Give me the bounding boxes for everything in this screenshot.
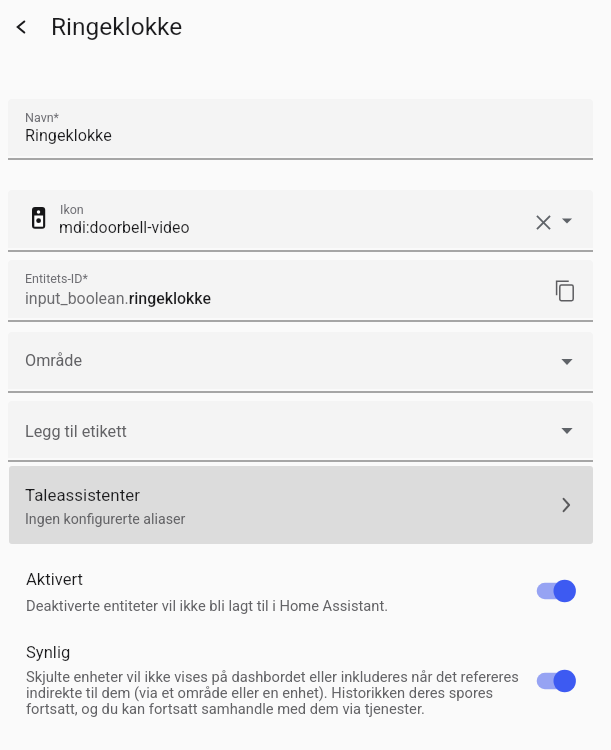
- button[interactable]: Add label: [555, 419, 579, 443]
- button[interactable]: Clear icon: [531, 210, 555, 234]
- staticText: Deaktiverte entiteter vil ikke bli lagt …: [26, 597, 389, 614]
- staticText: Entitets-ID*: [25, 271, 88, 286]
- button[interactable]: Copy entity id: [550, 274, 580, 304]
- staticText: input_boolean.ringeklokke: [25, 289, 211, 308]
- button[interactable]: Synlig: [8, 633, 593, 728]
- button[interactable]: Select icon: [555, 209, 579, 233]
- staticText: Ingen konfigurerte aliaser: [25, 511, 186, 528]
- button[interactable]: Legg til etikett: [8, 401, 593, 458]
- button[interactable]: Aktivert: [8, 559, 593, 621]
- button[interactable]: Select area: [555, 350, 579, 374]
- button[interactable]: Aktivert toggle, on: [536, 576, 580, 606]
- staticText: Legg til etikett: [25, 422, 127, 441]
- staticText: Navn*: [25, 110, 59, 125]
- staticText: Skjulte enheter vil ikke vises på dashbo…: [26, 668, 522, 717]
- staticText: Område: [25, 351, 83, 370]
- staticText: Taleassistenter: [25, 485, 140, 505]
- button[interactable]: Ikon: [8, 190, 593, 248]
- staticText: Ringeklokke: [51, 12, 183, 41]
- button[interactable]: Område: [8, 332, 593, 389]
- button[interactable]: Taleassistenter, Ingen konfigurerte alia…: [9, 466, 593, 544]
- button[interactable]: Synlig toggle, on: [536, 666, 580, 696]
- staticText: Ikon: [60, 202, 84, 217]
- staticText: Synlig: [26, 643, 71, 662]
- staticText: mdi:doorbell-video: [59, 218, 190, 237]
- button[interactable]: Navn: [8, 99, 593, 156]
- button[interactable]: Entitets-ID: [8, 260, 593, 318]
- button[interactable]: Back: [0, 6, 42, 48]
- staticText: Ringeklokke: [25, 126, 112, 145]
- staticText: Aktivert: [26, 570, 83, 589]
